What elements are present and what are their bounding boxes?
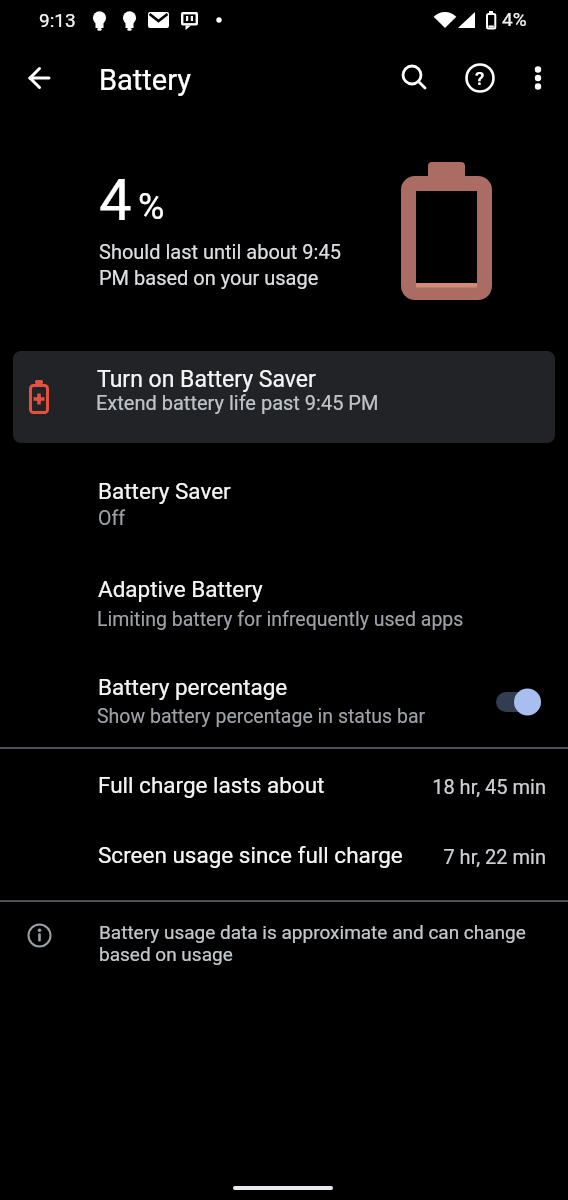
button[interactable]: Turn on Battery Saver bbox=[13, 351, 555, 443]
staticText: Extend battery life past 9:45 PM bbox=[96, 391, 379, 414]
staticText: Turn on Battery Saver bbox=[97, 366, 316, 393]
staticText: Battery usage data is approximate and ca… bbox=[99, 921, 526, 966]
staticText: Full charge lasts about bbox=[98, 772, 325, 798]
staticText: 4 bbox=[99, 166, 132, 234]
button[interactable]: Full charge lasts about bbox=[0, 749, 568, 825]
staticText: 9:13 bbox=[39, 9, 76, 31]
staticText: ? bbox=[475, 67, 485, 89]
button[interactable]: Screen usage since full charge bbox=[0, 825, 568, 900]
button[interactable]: Battery Saver bbox=[0, 462, 568, 548]
staticText: Limiting battery for infrequently used a… bbox=[97, 608, 464, 631]
staticText: Battery percentage bbox=[98, 674, 288, 700]
staticText: Screen usage since full charge bbox=[98, 842, 403, 868]
staticText: 7 hr, 22 min bbox=[250, 845, 546, 868]
staticText: 4% bbox=[502, 8, 527, 30]
button[interactable] bbox=[401, 64, 427, 90]
staticText: 18 hr, 45 min bbox=[250, 775, 546, 798]
button[interactable]: ? bbox=[465, 63, 495, 93]
staticText: Battery Saver bbox=[98, 478, 231, 504]
staticText: Show battery percentage in status bar bbox=[97, 705, 426, 728]
button[interactable]: Adaptive Battery bbox=[0, 560, 568, 646]
button[interactable]: Battery percentage bbox=[0, 658, 568, 746]
button[interactable] bbox=[28, 67, 50, 89]
button[interactable] bbox=[528, 66, 548, 90]
staticText: Adaptive Battery bbox=[98, 576, 263, 602]
staticText: Off bbox=[98, 507, 125, 530]
staticText: Battery bbox=[99, 63, 191, 97]
button[interactable] bbox=[494, 688, 542, 716]
staticText: Should last until about 9:45 PM based on… bbox=[99, 240, 341, 290]
staticText: % bbox=[138, 186, 165, 228]
